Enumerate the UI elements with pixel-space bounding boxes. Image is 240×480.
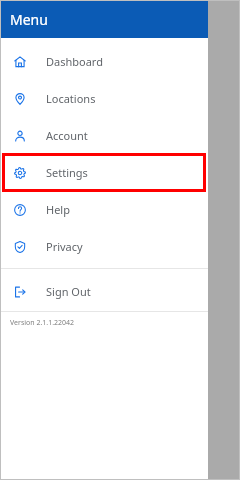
staticText: Account <box>46 128 88 143</box>
button[interactable]: Help <box>0 191 208 228</box>
other: Settings highlighted <box>2 153 206 192</box>
staticText: Locations <box>46 91 96 106</box>
staticText: Menu <box>10 10 48 29</box>
button[interactable]: Dashboard <box>0 43 208 80</box>
staticText: Privacy <box>46 239 83 254</box>
staticText: Settings <box>46 165 88 180</box>
button[interactable]: Locations <box>0 80 208 117</box>
staticText: Dashboard <box>46 54 103 69</box>
button[interactable]: Menu <box>0 0 208 38</box>
button[interactable]: Settings <box>0 154 208 191</box>
staticText: Help <box>46 202 70 217</box>
staticText: Version 2.1.1.22042 <box>10 318 75 328</box>
staticText: Sign Out <box>46 284 91 299</box>
button[interactable]: Privacy <box>0 228 208 265</box>
button[interactable]: Account <box>0 117 208 154</box>
button[interactable]: Sign Out <box>0 273 208 310</box>
